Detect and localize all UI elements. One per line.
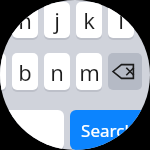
button[interactable]: b bbox=[12, 53, 38, 90]
staticText: k bbox=[83, 5, 95, 35]
staticText: b bbox=[18, 57, 32, 87]
button[interactable]: k bbox=[76, 2, 102, 38]
staticText: h bbox=[18, 5, 32, 35]
button[interactable]: l bbox=[108, 2, 134, 38]
button[interactable]: m bbox=[76, 53, 102, 90]
staticText: j bbox=[54, 5, 60, 35]
staticText: n bbox=[50, 57, 64, 87]
button[interactable]: h bbox=[12, 2, 38, 38]
staticText: l bbox=[118, 5, 124, 35]
button[interactable]: Backspace bbox=[108, 53, 142, 90]
staticText: Search bbox=[81, 119, 135, 142]
button[interactable] bbox=[0, 53, 6, 90]
button[interactable]: Search bbox=[70, 110, 146, 150]
staticText: m bbox=[79, 57, 100, 87]
button[interactable]: e bbox=[0, 110, 64, 150]
button[interactable]: j bbox=[44, 2, 70, 38]
button[interactable]: n bbox=[44, 53, 70, 90]
